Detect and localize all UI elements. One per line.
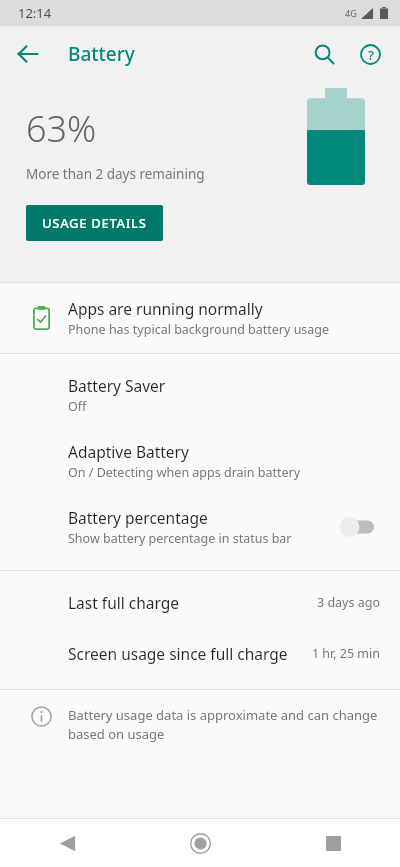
staticText: 12:14 [18, 4, 52, 22]
staticText: Battery [68, 41, 135, 67]
staticText: 1 hr, 25 min [311, 645, 380, 662]
staticText: Screen usage since full charge [68, 643, 288, 664]
button[interactable]: Last full charge [0, 577, 400, 628]
staticText: Show battery percentage in status bar [68, 530, 292, 547]
button[interactable]: Battery Saver [0, 362, 400, 428]
staticText: 63% [26, 104, 97, 153]
staticText: Battery usage data is approximate and ca… [68, 706, 380, 743]
staticText: Battery percentage [68, 507, 208, 528]
staticText: 3 days ago [317, 594, 380, 611]
staticText: Last full charge [68, 592, 180, 613]
button[interactable]: Apps are running normally [0, 283, 400, 353]
staticText: On / Detecting when apps drain battery [68, 464, 301, 481]
button[interactable]: Home [134, 819, 267, 867]
button[interactable]: Back [0, 819, 134, 867]
staticText: More than 2 days remaining [26, 165, 205, 183]
staticText: Phone has typical background battery usa… [68, 321, 330, 338]
button[interactable]: Search [304, 34, 344, 74]
button[interactable]: Battery percentage toggle [332, 512, 384, 542]
staticText: Battery Saver [68, 375, 166, 396]
button[interactable]: Help [350, 34, 390, 74]
staticText: Apps are running normally [68, 298, 263, 319]
button[interactable]: Back [8, 34, 48, 74]
button[interactable]: Battery percentage [0, 494, 400, 560]
staticText: Off [68, 398, 87, 415]
button[interactable]: Recent apps [267, 819, 400, 867]
staticText: ? [368, 46, 374, 64]
staticText: USAGE DETAILS [42, 214, 147, 232]
staticText: 4G [345, 7, 357, 19]
button[interactable]: USAGE DETAILS [26, 205, 163, 241]
button[interactable]: Adaptive Battery [0, 428, 400, 494]
button[interactable]: Screen usage since full charge [0, 628, 400, 679]
staticText: Adaptive Battery [68, 441, 189, 462]
